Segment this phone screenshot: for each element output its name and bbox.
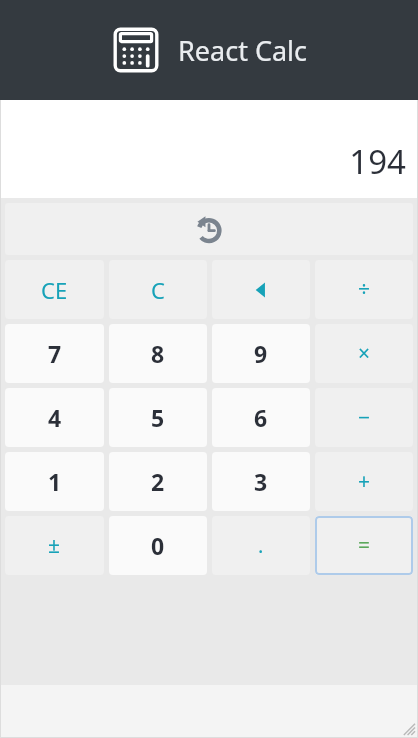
staticText: ×: [358, 339, 371, 368]
staticText: React Calc: [178, 32, 308, 69]
staticText: −: [358, 403, 371, 432]
staticText: 0: [151, 530, 165, 561]
other: Resize: [399, 719, 415, 735]
button[interactable]: ÷: [315, 260, 413, 319]
button[interactable]: History: [5, 203, 413, 255]
button[interactable]: 8: [109, 324, 207, 383]
staticText: ÷: [358, 275, 371, 304]
staticText: 6: [254, 402, 268, 433]
staticText: 3: [254, 466, 268, 497]
staticText: 7: [48, 338, 62, 369]
button[interactable]: ×: [315, 324, 413, 383]
button[interactable]: 1: [5, 452, 104, 511]
staticText: 8: [151, 338, 165, 369]
button[interactable]: 6: [212, 388, 310, 447]
button[interactable]: 0: [109, 516, 207, 575]
button[interactable]: .: [212, 516, 310, 575]
staticText: CE: [41, 275, 68, 305]
button[interactable]: 3: [212, 452, 310, 511]
button[interactable]: +: [315, 452, 413, 511]
staticText: 4: [48, 402, 62, 433]
staticText: C: [151, 275, 165, 305]
staticText: 5: [151, 402, 165, 433]
button[interactable]: 2: [109, 452, 207, 511]
button[interactable]: 7: [5, 324, 104, 383]
staticText: ±: [48, 531, 61, 560]
button[interactable]: ±: [5, 516, 104, 575]
button[interactable]: Backspace: [212, 260, 310, 319]
staticText: 1: [48, 466, 62, 497]
button[interactable]: CE: [5, 260, 104, 319]
button[interactable]: 9: [212, 324, 310, 383]
other: Calculator: [110, 24, 162, 76]
staticText: =: [358, 531, 371, 560]
staticText: +: [358, 467, 371, 496]
button[interactable]: 4: [5, 388, 104, 447]
staticText: 2: [151, 466, 165, 497]
staticText: 9: [254, 338, 268, 369]
button[interactable]: −: [315, 388, 413, 447]
button[interactable]: C: [109, 260, 207, 319]
staticText: 194: [349, 139, 406, 184]
staticText: .: [258, 532, 264, 559]
button[interactable]: =: [315, 516, 413, 575]
button[interactable]: 5: [109, 388, 207, 447]
